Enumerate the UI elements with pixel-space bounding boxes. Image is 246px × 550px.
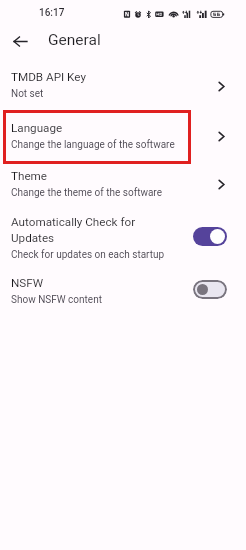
button[interactable]: NSFW <box>0 275 246 323</box>
staticText: Change the theme of the software <box>11 187 162 199</box>
staticText: Not set <box>11 88 44 100</box>
staticText: Check for updates on each startup <box>11 249 165 261</box>
button[interactable]: TMDB API Key <box>0 69 246 118</box>
button[interactable]: Automatically Check for Updates <box>0 214 246 275</box>
staticText: 16:17 <box>39 7 65 19</box>
button[interactable]: Language <box>0 120 246 168</box>
button[interactable]: Back <box>6 27 34 55</box>
staticText: Change the language of the software <box>11 139 175 151</box>
staticText: Show NSFW content <box>11 294 102 306</box>
staticText: Language <box>11 121 191 135</box>
button[interactable]: Theme <box>0 168 246 214</box>
staticText: TMDB API Key <box>11 70 191 84</box>
button[interactable]: Toggle on <box>193 227 227 246</box>
staticText: Automatically Check for Updates <box>11 215 151 245</box>
staticText: General <box>48 31 101 49</box>
staticText: NSFW <box>11 276 191 290</box>
button[interactable]: Toggle off <box>193 280 227 299</box>
staticText: Theme <box>11 169 191 183</box>
